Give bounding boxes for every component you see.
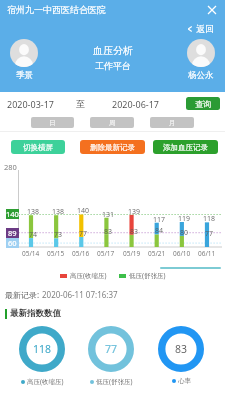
button[interactable]: 日 xyxy=(31,117,74,128)
staticText: 杨公永 xyxy=(188,70,214,81)
staticText: 删除最新记录 xyxy=(90,143,135,152)
staticText: 2020-03-17 xyxy=(7,98,54,110)
staticText: 83 xyxy=(175,342,188,356)
staticText: 05/21 xyxy=(148,249,166,258)
staticText: 05/19 xyxy=(123,249,141,258)
staticText: 低压(舒张压) xyxy=(96,377,133,386)
staticText: 2020-06-17 xyxy=(112,98,159,110)
staticText: 06/10 xyxy=(173,249,191,258)
button[interactable]: 删除最新记录 xyxy=(80,140,145,154)
staticText: 最新指数数值 xyxy=(10,308,61,319)
staticText: 切换横屏 xyxy=(23,143,53,152)
staticText: 高压(收缩压) xyxy=(27,377,64,386)
staticText: 工作平台 xyxy=(95,60,131,71)
staticText: 139 xyxy=(128,207,141,217)
staticText: 05/15 xyxy=(47,249,65,258)
staticText: 80 xyxy=(180,228,189,238)
staticText: 77 xyxy=(205,229,214,239)
staticText: 60 xyxy=(8,238,17,248)
staticText: 84 xyxy=(155,226,164,236)
staticText: 宿州九一中西医结合医院 xyxy=(7,4,106,15)
button[interactable]: 切换横屏 xyxy=(11,140,65,154)
button[interactable]: 添加血压记录 xyxy=(153,140,218,154)
staticText: 低压(舒张压) xyxy=(129,271,166,280)
staticText: 74 xyxy=(29,230,38,240)
staticText: 77 xyxy=(105,342,118,356)
staticText: 高压(收缩压) xyxy=(70,271,107,280)
button[interactable]: 周 xyxy=(90,117,134,128)
button[interactable]: 查询 xyxy=(186,97,220,110)
staticText: 2020-06-11 07:16:37 xyxy=(42,289,118,300)
button[interactable]: 月 xyxy=(150,117,194,128)
staticText: 73 xyxy=(54,230,63,240)
staticText: 118 xyxy=(203,214,216,224)
staticText: 周 xyxy=(109,119,116,127)
staticText: 118 xyxy=(33,342,52,356)
staticText: 140 xyxy=(77,206,90,216)
staticText: 140 xyxy=(6,209,19,219)
staticText: 83 xyxy=(104,227,113,237)
staticText: 至 xyxy=(76,98,85,109)
staticText: 05/16 xyxy=(72,249,90,258)
staticText: 06/11 xyxy=(198,249,216,258)
staticText: 月 xyxy=(169,119,176,127)
button[interactable]: Close xyxy=(204,2,220,18)
staticText: 05/17 xyxy=(97,249,115,258)
staticText: 138 xyxy=(52,207,65,217)
staticText: 添加血压记录 xyxy=(163,143,208,152)
staticText: 131 xyxy=(102,210,115,220)
staticText: 280 xyxy=(4,162,17,172)
staticText: 119 xyxy=(178,214,191,224)
button[interactable]: 返回 xyxy=(186,23,214,34)
staticText: 77 xyxy=(79,229,88,239)
staticText: 117 xyxy=(153,215,166,225)
staticText: 心率 xyxy=(178,377,191,385)
staticText: 89 xyxy=(8,228,17,238)
staticText: 查询 xyxy=(195,99,211,109)
staticText: 138 xyxy=(27,207,40,217)
staticText: 血压分析 xyxy=(93,44,133,57)
staticText: 05/14 xyxy=(22,249,40,258)
staticText: 返回 xyxy=(196,23,214,34)
staticText: 季景 xyxy=(16,70,33,81)
staticText: 日 xyxy=(49,119,56,127)
staticText: 83 xyxy=(130,227,139,237)
staticText: 最新记录: xyxy=(5,289,42,300)
